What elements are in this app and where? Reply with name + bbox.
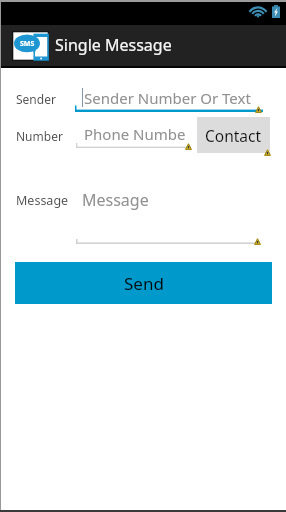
staticText: Message — [82, 189, 149, 211]
staticText: Single Message — [55, 34, 172, 56]
other: Battery charging — [272, 5, 280, 18]
staticText: Send — [124, 272, 164, 295]
staticText: Number — [16, 128, 63, 144]
button[interactable]: Sender Number Or Text — [75, 86, 263, 112]
staticText: Message — [16, 192, 69, 209]
staticText: SMS — [20, 39, 35, 49]
other: SMS app icon — [12, 31, 49, 61]
other: Warning — [264, 149, 271, 156]
button[interactable]: Phone Numbe — [76, 122, 188, 148]
staticText: Sender — [16, 91, 56, 107]
button[interactable]: Message — [8, 189, 78, 213]
button[interactable]: Contact — [197, 117, 270, 153]
button[interactable]: Send — [15, 262, 272, 304]
button[interactable]: Number — [8, 123, 78, 147]
other: Warning — [185, 143, 192, 150]
button[interactable]: Sender — [8, 86, 74, 110]
other: Warning — [255, 106, 262, 113]
other: Warning — [254, 238, 261, 245]
button[interactable]: Message — [76, 188, 256, 244]
other: Wi-Fi signal — [250, 6, 266, 18]
staticText: Phone Numbe — [84, 124, 186, 144]
button[interactable]: SMS app icon — [0, 25, 286, 66]
staticText: Sender Number Or Text — [84, 88, 251, 108]
staticText: Contact — [205, 125, 262, 146]
